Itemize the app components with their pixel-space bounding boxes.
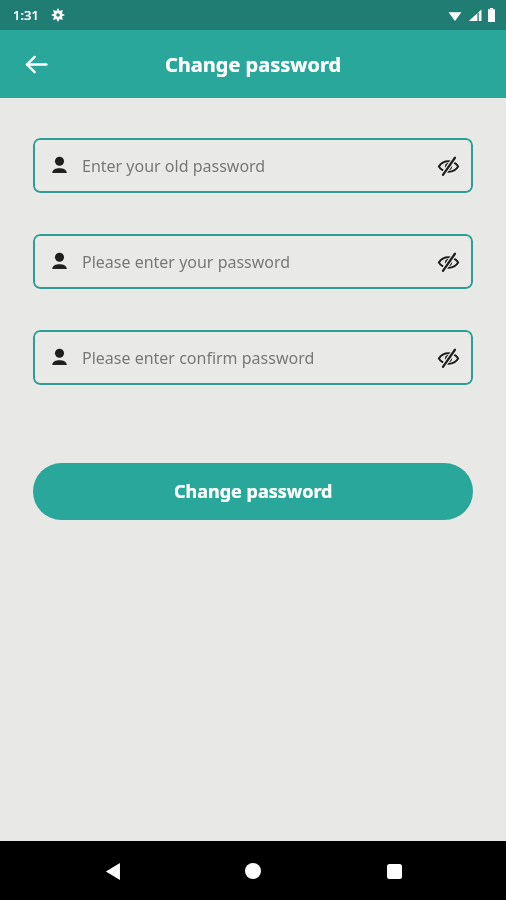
button[interactable]: Back xyxy=(12,40,60,88)
staticText: Please enter your password xyxy=(82,251,426,273)
button[interactable]: Change password xyxy=(33,463,473,520)
staticText: 1:31 xyxy=(13,6,39,24)
staticText: Enter your old password xyxy=(82,155,426,177)
button[interactable]: Enter your old password xyxy=(33,138,473,193)
staticText: Please enter confirm password xyxy=(82,347,426,369)
button[interactable]: Please enter confirm password xyxy=(33,330,473,385)
button[interactable]: Please enter your password xyxy=(33,234,473,289)
button[interactable]: Recent apps xyxy=(366,843,422,899)
staticText: Change password xyxy=(174,479,333,504)
button[interactable]: Show password xyxy=(426,240,470,284)
button[interactable]: Home xyxy=(225,843,281,899)
button[interactable]: Show password xyxy=(426,336,470,380)
staticText: Change password xyxy=(165,51,342,78)
button[interactable]: Back xyxy=(85,843,141,899)
button[interactable]: Show password xyxy=(426,144,470,188)
